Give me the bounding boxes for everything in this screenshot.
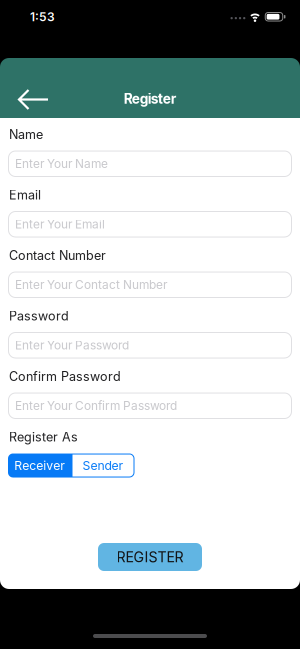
staticText: REGISTER xyxy=(116,548,183,565)
staticText: Enter Your Contact Number xyxy=(15,278,167,292)
button[interactable]: Enter Your Confirm Password xyxy=(8,392,292,419)
button[interactable]: Sender xyxy=(72,454,133,476)
staticText: Sender xyxy=(82,458,123,473)
button[interactable]: Receiver xyxy=(8,453,71,477)
staticText: Enter Your Password xyxy=(15,338,129,352)
button[interactable]: Enter Your Contact Number xyxy=(8,271,292,298)
staticText: Name xyxy=(9,127,43,142)
staticText: Contact Number xyxy=(9,248,106,263)
staticText: 1:53 xyxy=(30,9,55,24)
button[interactable]: Enter Your Name xyxy=(8,150,292,177)
staticText: Enter Your Name xyxy=(15,157,108,171)
button[interactable]: Enter Your Email xyxy=(8,211,292,237)
staticText: Enter Your Email xyxy=(15,217,105,231)
button[interactable]: Back xyxy=(0,83,54,115)
staticText: Email xyxy=(9,187,41,203)
button[interactable]: REGISTER xyxy=(98,543,202,571)
staticText: Enter Your Confirm Password xyxy=(15,399,177,413)
staticText: Password xyxy=(9,308,69,324)
staticText: Register xyxy=(124,90,176,107)
staticText: Confirm Password xyxy=(9,369,121,384)
staticText: Register As xyxy=(9,429,78,445)
button[interactable]: Enter Your Password xyxy=(8,332,292,358)
staticText: Receiver xyxy=(14,458,65,473)
